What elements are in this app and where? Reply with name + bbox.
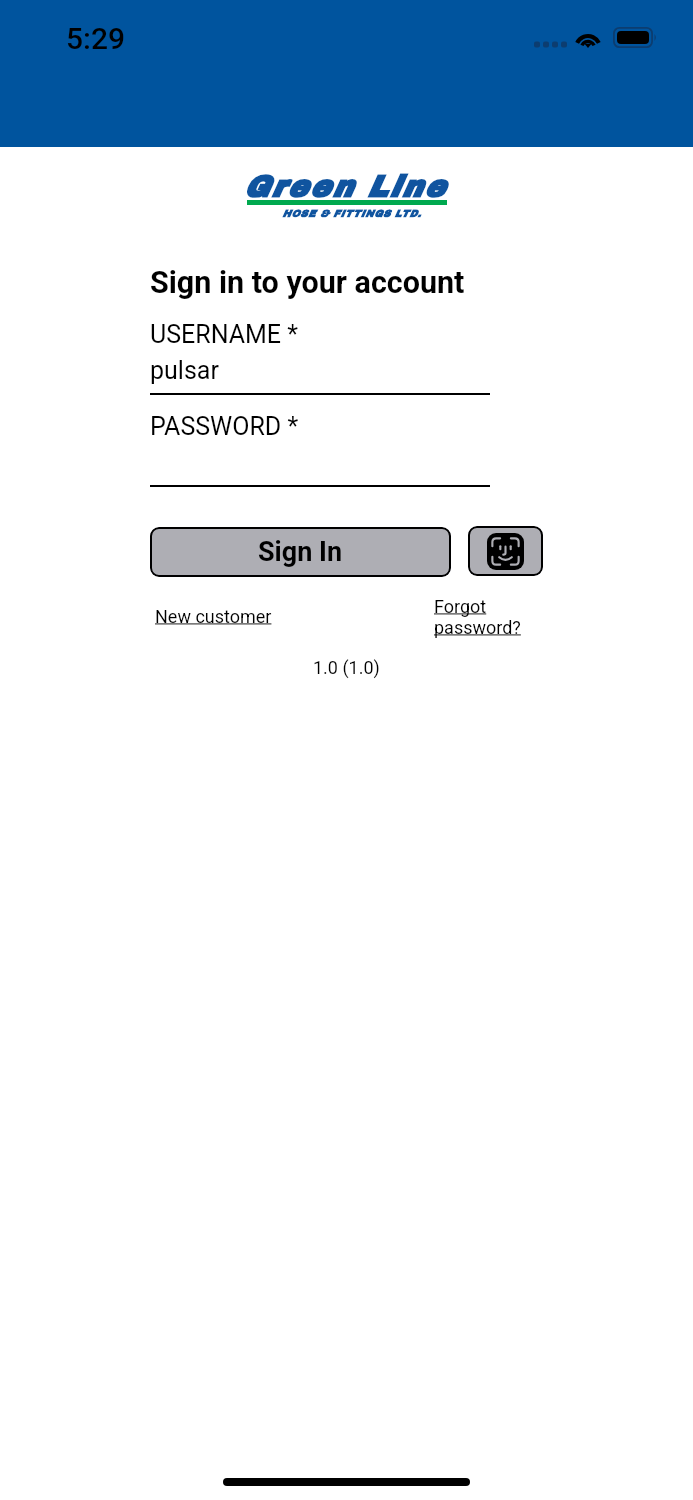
button[interactable]: New customer bbox=[150, 602, 277, 631]
staticText: USERNAME * bbox=[150, 320, 299, 349]
staticText: Forgot bbox=[434, 596, 487, 617]
staticText: Sign in to your account bbox=[150, 265, 465, 301]
button[interactable]: Forgot bbox=[429, 592, 526, 642]
staticText: New customer bbox=[155, 606, 272, 627]
button[interactable]: Sign in with Face ID bbox=[468, 526, 543, 576]
staticText: HOSE & FITTINGS LTD. bbox=[282, 208, 422, 219]
staticText: password? bbox=[434, 617, 521, 638]
staticText: Green Line bbox=[243, 171, 446, 204]
staticText: PASSWORD * bbox=[150, 412, 299, 441]
staticText: pulsar bbox=[150, 356, 219, 385]
staticText: 5:29 bbox=[66, 21, 126, 56]
staticText: 1.0 (1.0) bbox=[313, 657, 380, 678]
staticText: Sign In bbox=[258, 536, 343, 568]
button[interactable]: Sign In bbox=[150, 527, 451, 577]
